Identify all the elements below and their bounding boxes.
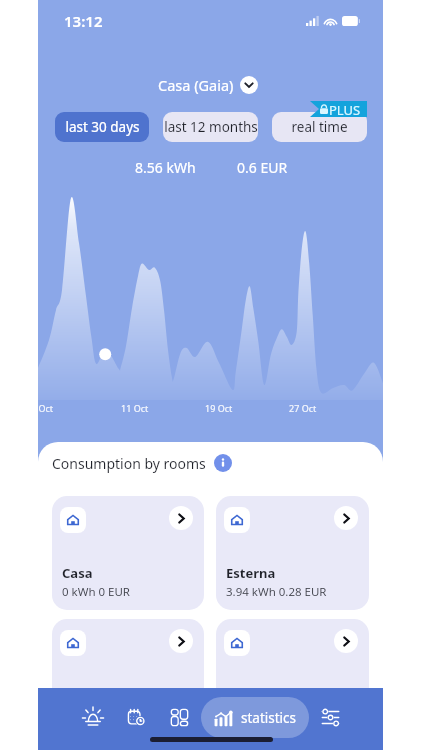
button[interactable]: Info: [214, 454, 232, 472]
staticText: Casa (Gaia): [158, 75, 234, 95]
staticText: 19 Oct: [205, 402, 233, 414]
button[interactable]: Open Salotto: [334, 629, 358, 653]
button[interactable]: Casa (Gaia): [154, 71, 262, 99]
staticText: 1.2 kWh 0.1 EUR: [62, 707, 150, 723]
staticText: 0.6 EUR: [237, 158, 288, 177]
button[interactable]: last 12 months: [163, 112, 258, 142]
button[interactable]: Open Esterna: [216, 496, 369, 610]
staticText: Consumption by rooms: [52, 454, 206, 473]
staticText: 27 Oct: [289, 402, 317, 414]
staticText: statistics: [241, 709, 297, 727]
staticText: 11 Oct: [121, 402, 149, 414]
staticText: last 12 months: [164, 118, 258, 136]
button[interactable]: Open Cucina: [169, 629, 193, 653]
staticText: Cucina: [62, 687, 106, 705]
button[interactable]: statistics: [201, 697, 309, 738]
staticText: 3.94 kWh 0.28 EUR: [226, 584, 327, 600]
button[interactable]: last 30 days: [55, 112, 149, 142]
staticText: 8.56 kWh: [135, 158, 196, 177]
button[interactable]: Open Cucina: [52, 619, 204, 733]
staticText: Esterna: [226, 564, 276, 582]
staticText: Salotto: [226, 687, 273, 705]
staticText: last 30 days: [65, 118, 140, 136]
button[interactable]: Schedule: [119, 700, 153, 734]
button[interactable]: Settings: [313, 700, 347, 734]
button[interactable]: Sunrise: [76, 700, 110, 734]
button[interactable]: Open Salotto: [216, 619, 369, 733]
staticText: 2.4 kWh 0.2 EUR: [226, 707, 314, 723]
staticText: real time: [291, 118, 348, 136]
button[interactable]: real time: [272, 112, 367, 142]
staticText: 0 kWh 0 EUR: [62, 584, 131, 600]
staticText: 13:12: [64, 11, 103, 31]
button[interactable]: Open Casa: [52, 496, 204, 610]
button[interactable]: Open Casa: [169, 506, 193, 530]
staticText: PLUS: [329, 101, 361, 117]
button[interactable]: Dashboard: [162, 700, 196, 734]
staticText: Casa: [62, 564, 93, 582]
staticText: 3 Oct: [31, 402, 54, 414]
button[interactable]: Open Esterna: [334, 506, 358, 530]
